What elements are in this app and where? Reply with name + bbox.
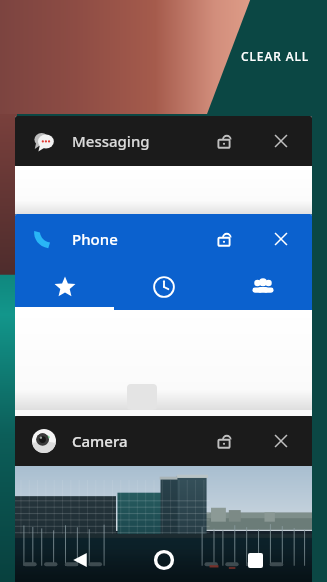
button[interactable]: Close — [263, 423, 299, 459]
staticText: CLEAR ALL — [241, 48, 310, 64]
button[interactable]: Back — [58, 538, 102, 582]
other: Recents — [153, 276, 175, 298]
button[interactable]: Camera — [15, 416, 312, 582]
button[interactable]: Recents — [114, 264, 213, 310]
other: Favorites — [54, 276, 76, 298]
button[interactable]: Lock task — [206, 423, 242, 459]
button[interactable]: Home — [142, 538, 186, 582]
button[interactable]: Close — [263, 221, 299, 257]
button[interactable]: Contacts — [213, 264, 312, 310]
button[interactable]: Lock task — [206, 123, 242, 159]
button[interactable]: Messaging — [15, 116, 312, 214]
button[interactable]: Lock task — [206, 221, 242, 257]
button[interactable]: Close — [263, 123, 299, 159]
button[interactable]: Recent apps — [233, 538, 277, 582]
button[interactable]: Favorites — [15, 264, 114, 310]
staticText: Phone — [72, 229, 118, 249]
staticText: Camera — [72, 431, 128, 451]
other: Contacts — [251, 275, 275, 299]
staticText: Messaging — [72, 131, 150, 151]
button[interactable]: CLEAR ALL — [235, 44, 316, 68]
button[interactable]: Phone — [15, 214, 312, 416]
